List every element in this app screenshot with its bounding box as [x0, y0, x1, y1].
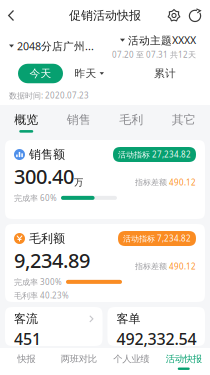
- staticText: 累计: [154, 67, 176, 80]
- staticText: 概览: [14, 112, 38, 127]
- button[interactable]: 个人业绩: [105, 348, 157, 375]
- button[interactable]: 其它: [157, 105, 210, 140]
- button[interactable]: 概览: [0, 105, 52, 140]
- staticText: 451: [14, 328, 41, 349]
- staticText: 活动主题XXXX: [128, 33, 196, 47]
- staticText: 毛利额: [29, 231, 65, 246]
- button[interactable]: 两班对比: [52, 348, 105, 375]
- staticText: 完成率 60%: [14, 193, 57, 203]
- staticText: 销售: [67, 112, 91, 127]
- staticText: 数据时间: 2020.07.23: [9, 90, 89, 101]
- button[interactable]: Settings: [167, 8, 181, 22]
- staticText: 492,332.54: [116, 328, 196, 349]
- button[interactable]: 快报: [0, 348, 52, 375]
- staticText: 活动指标 7,234.82: [123, 233, 191, 244]
- staticText: 毛利: [119, 112, 143, 127]
- staticText: 活动快报: [166, 353, 202, 365]
- staticText: 2048分店广州...: [17, 39, 94, 53]
- button[interactable]: 活动主题XXXX: [120, 32, 196, 48]
- staticText: 快报: [17, 353, 35, 365]
- button[interactable]: 活动指标 27,234.82: [113, 147, 196, 162]
- button[interactable]: 2048分店广州...: [0, 36, 94, 56]
- button[interactable]: 昨天: [75, 63, 104, 84]
- staticText: 万: [74, 177, 83, 188]
- staticText: 两班对比: [61, 353, 97, 365]
- button[interactable]: 活动快报: [157, 348, 210, 375]
- staticText: 今天: [29, 67, 51, 80]
- staticText: 完成率 300%: [14, 277, 62, 287]
- staticText: 个人业绩: [113, 353, 149, 365]
- staticText: 指标差额: [135, 177, 167, 187]
- button[interactable]: 销售: [52, 105, 105, 140]
- staticText: 490.12: [169, 177, 196, 188]
- staticText: 300.40: [14, 163, 74, 190]
- button[interactable]: 今天: [18, 64, 63, 83]
- staticText: 促销活动快报: [69, 8, 141, 23]
- button[interactable]: 客流: [5, 307, 102, 346]
- staticText: 其它: [172, 112, 196, 127]
- button[interactable]: 活动指标 7,234.82: [118, 231, 196, 246]
- staticText: 活动指标 27,234.82: [118, 149, 191, 160]
- staticText: 销售额: [29, 147, 65, 162]
- button[interactable]: Refresh: [181, 8, 210, 22]
- staticText: 指标差额: [135, 261, 167, 271]
- staticText: 昨天: [75, 67, 97, 80]
- button[interactable]: 毛利: [105, 105, 157, 140]
- staticText: 毛利率 40.23%: [14, 290, 69, 301]
- staticText: 07.20 至 07.31 共12天: [112, 49, 196, 60]
- staticText: 客单: [116, 311, 140, 326]
- staticText: 9,234.89: [14, 247, 90, 274]
- button[interactable]: 累计: [154, 63, 176, 84]
- button[interactable]: 客单: [107, 307, 205, 346]
- staticText: 490.12: [169, 261, 196, 272]
- button[interactable]: Back: [0, 3, 22, 27]
- staticText: 客流: [14, 311, 38, 326]
